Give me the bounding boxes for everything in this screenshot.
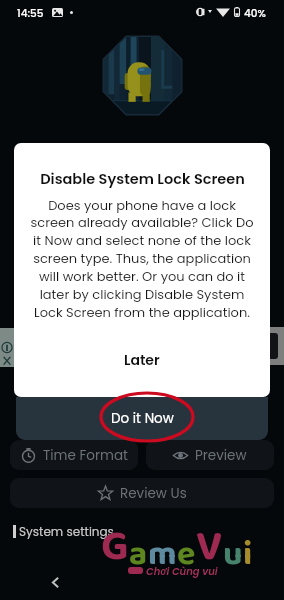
button[interactable]: Ad (268, 327, 284, 365)
staticText: Chơi Cùng vui (146, 564, 218, 578)
staticText: Time Format (43, 446, 128, 465)
staticText: Disable System Lock Screen (40, 169, 245, 189)
staticText: Do it Now (111, 409, 174, 428)
button[interactable]: Preview (146, 440, 274, 470)
button[interactable]: Time Format (10, 440, 138, 470)
button[interactable]: Do it Now (16, 397, 268, 440)
staticText: 14:55 (17, 6, 44, 21)
staticText: 40% (244, 6, 266, 21)
staticText: Preview (195, 446, 247, 465)
staticText: V (196, 514, 223, 581)
staticText: System settings (19, 523, 114, 540)
staticText: Review Us (120, 484, 187, 503)
button[interactable]: Back (42, 569, 68, 595)
staticText: m (148, 527, 177, 581)
staticText: i (243, 527, 253, 581)
staticText: a (129, 527, 148, 581)
button[interactable]: Ad info (0, 328, 14, 367)
staticText: Does your phone have a lock screen alrea… (28, 196, 256, 322)
button[interactable]: Later (28, 348, 256, 372)
staticText: e (177, 527, 196, 581)
staticText: u (223, 527, 243, 581)
button[interactable]: Review Us (10, 478, 274, 508)
staticText: G (101, 514, 129, 581)
staticText: Later (124, 350, 160, 370)
